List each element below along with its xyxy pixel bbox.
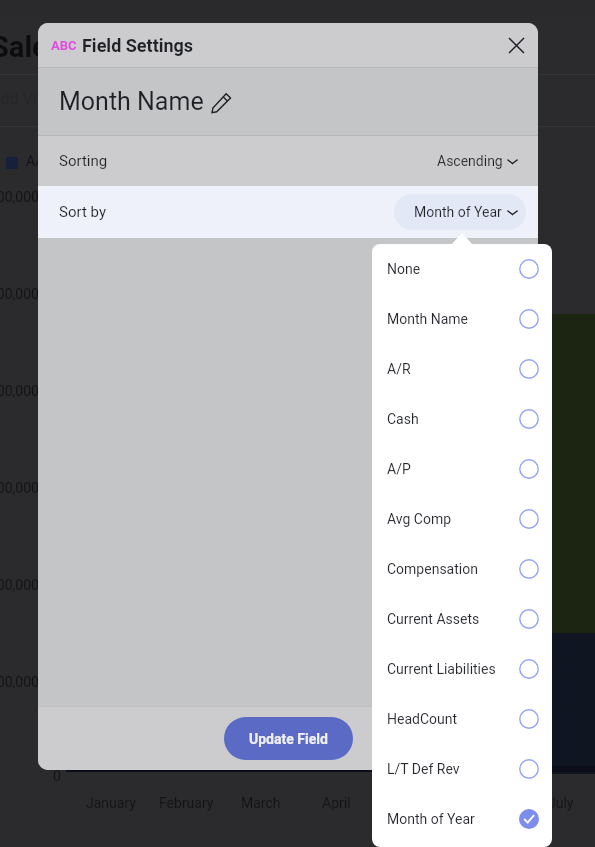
staticText: 200,000 xyxy=(0,577,39,593)
button[interactable]: HeadCount xyxy=(372,694,552,744)
staticText: March xyxy=(241,795,281,811)
button[interactable]: Current Liabilities xyxy=(372,644,552,694)
staticText: A/R xyxy=(26,153,50,169)
button[interactable]: A/P xyxy=(372,444,552,494)
button[interactable]: L/T Def Rev xyxy=(372,744,552,794)
staticText: Ascending xyxy=(437,153,503,169)
button[interactable]: Compensation xyxy=(372,544,552,594)
staticText: 400,000 xyxy=(0,383,39,399)
staticText: L/T Def Rev xyxy=(387,761,460,777)
staticText: 100,000 xyxy=(0,674,39,690)
staticText: Month of Year xyxy=(414,204,502,220)
staticText: 0 xyxy=(53,768,61,784)
button[interactable]: Sorting xyxy=(38,136,538,186)
staticText: Cash xyxy=(387,411,419,427)
staticText: Month Name xyxy=(387,311,469,327)
staticText: February xyxy=(159,795,214,811)
staticText: Sort by xyxy=(59,203,106,221)
staticText: A/P xyxy=(387,461,411,477)
staticText: 300,000 xyxy=(0,480,39,496)
staticText: Compensation xyxy=(387,561,478,577)
button[interactable]: Month of Year xyxy=(372,794,552,844)
button[interactable]: Current Assets xyxy=(372,594,552,644)
staticText: Update Field xyxy=(249,731,328,747)
staticText: April xyxy=(322,795,351,811)
staticText: July xyxy=(548,795,574,811)
staticText: None xyxy=(387,261,421,277)
staticText: 500,000 xyxy=(0,286,39,302)
staticText: January xyxy=(86,795,136,811)
staticText: Avg Comp xyxy=(387,511,452,527)
button[interactable]: A/R xyxy=(372,344,552,394)
staticText: A/R xyxy=(387,361,411,377)
staticText: Sorting xyxy=(59,152,108,170)
button[interactable]: Avg Comp xyxy=(372,494,552,544)
staticText: Month of Year xyxy=(387,811,475,827)
button[interactable]: Update Field xyxy=(224,717,353,760)
staticText: Add Visualization xyxy=(0,89,114,108)
button[interactable]: Month of Year xyxy=(394,194,526,230)
button[interactable]: None xyxy=(372,244,552,294)
staticText: Current Assets xyxy=(387,611,480,627)
button[interactable]: Month Name xyxy=(372,294,552,344)
staticText: Month Name xyxy=(59,87,204,116)
staticText: Field Settings xyxy=(82,35,194,56)
button[interactable]: Edit field name xyxy=(208,89,234,115)
staticText: ABC xyxy=(51,38,77,53)
button[interactable]: Close xyxy=(496,25,536,65)
staticText: Current Liabilities xyxy=(387,661,496,677)
staticText: 600,000 xyxy=(0,189,39,205)
staticText: HeadCount xyxy=(387,711,458,727)
staticText: Sales xyxy=(0,30,63,64)
button[interactable]: Cash xyxy=(372,394,552,444)
